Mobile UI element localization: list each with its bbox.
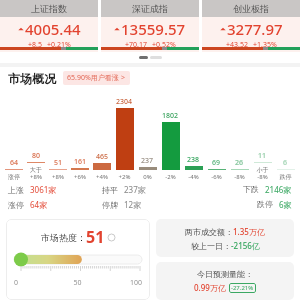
staticText: 65.90%用户看涨: [67, 73, 119, 83]
button[interactable]: 65.90%用户看涨: [63, 71, 130, 85]
staticText: 2304: [116, 97, 133, 107]
button[interactable]: 两市成交额：: [156, 219, 294, 257]
staticText: +1.35%: [253, 40, 277, 47]
staticText: 下跌: [243, 184, 259, 194]
staticText: 涨停: [8, 200, 24, 210]
staticText: 64家: [30, 199, 48, 210]
staticText: 今日预测量能：: [197, 269, 253, 279]
staticText: 市场概况: [8, 71, 56, 86]
staticText: 0.99万亿: [194, 282, 226, 293]
staticText: 市场热度：: [41, 232, 86, 243]
staticText: +43.52: [226, 40, 248, 47]
staticText: 上涨: [8, 185, 24, 195]
staticText: 1802: [162, 111, 179, 121]
staticText: 1.35万亿: [233, 226, 265, 237]
staticText: -27.21%: [231, 284, 254, 292]
staticText: +8%: [47, 173, 69, 181]
staticText: 100: [99, 278, 142, 288]
staticText: 0: [14, 278, 56, 288]
button[interactable]: 上证指数: [0, 0, 98, 52]
staticText: 深证成指: [132, 3, 168, 14]
staticText: +0.52%: [152, 40, 176, 47]
staticText: 237: [141, 156, 154, 166]
staticText: 3277.97: [227, 19, 283, 39]
staticText: 创业板指: [233, 3, 269, 14]
staticText: +4%: [91, 173, 113, 181]
staticText: -6%: [205, 173, 228, 181]
staticText: -4%: [182, 173, 205, 181]
staticText: 停牌: [102, 200, 118, 210]
button[interactable]: 市场热度：: [6, 219, 150, 300]
button[interactable]: 今日预测量能：: [156, 262, 294, 300]
staticText: 238: [187, 155, 200, 165]
staticText: 237家: [124, 184, 146, 195]
staticText: 26: [235, 158, 244, 168]
staticText: 64: [10, 158, 19, 168]
staticText: 4005.44: [25, 19, 81, 39]
staticText: 0%: [136, 173, 159, 181]
staticText: +70.17: [125, 40, 147, 47]
staticText: 小于 -8%: [251, 166, 274, 181]
staticText: 6: [283, 158, 288, 168]
staticText: 上证指数: [31, 3, 67, 14]
staticText: 50: [56, 278, 99, 288]
staticText: 涨停: [3, 173, 25, 181]
staticText: -2%: [159, 173, 182, 181]
staticText: 跌停: [274, 173, 297, 181]
button[interactable]: 深证成指: [101, 0, 199, 52]
staticText: 2146家: [265, 184, 292, 195]
staticText: 3061家: [30, 184, 57, 195]
staticText: 69: [212, 158, 221, 168]
staticText: 51: [54, 158, 63, 168]
staticText: 大于 +8%: [25, 166, 47, 181]
staticText: +8.5: [28, 40, 42, 47]
staticText: 12家: [124, 199, 142, 210]
staticText: 持平: [102, 185, 118, 195]
staticText: 13559.57: [121, 19, 186, 39]
other: 热度说明: [108, 234, 115, 241]
staticText: 11: [258, 151, 267, 161]
staticText: 较上一日：: [191, 241, 231, 251]
staticText: 161: [74, 157, 87, 167]
staticText: -2156亿: [231, 240, 260, 251]
staticText: 465: [96, 152, 109, 162]
staticText: -8%: [228, 173, 251, 181]
staticText: 6家: [279, 199, 292, 210]
staticText: 两市成交额：: [185, 227, 233, 237]
staticText: +2%: [113, 173, 136, 181]
staticText: 跌停: [257, 199, 273, 209]
button[interactable]: 创业板指: [202, 0, 300, 52]
staticText: 51: [86, 226, 105, 248]
staticText: 80: [32, 151, 41, 161]
staticText: +6%: [69, 173, 91, 181]
staticText: >: [121, 73, 126, 83]
staticText: +0.21%: [47, 40, 71, 47]
